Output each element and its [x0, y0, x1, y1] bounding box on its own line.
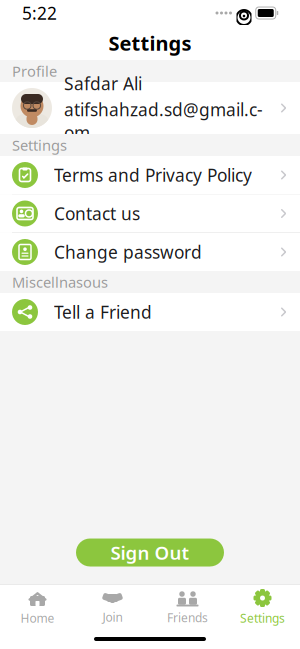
staticText: Join [102, 609, 122, 625]
staticText: Settings [240, 610, 285, 626]
button[interactable]: Contact us [0, 194, 300, 232]
staticText: Safdar Ali [64, 72, 142, 95]
staticText: 5:22 [22, 1, 57, 24]
button[interactable]: Tell a Friend [0, 293, 300, 331]
button[interactable]: Join [75, 585, 150, 629]
staticText: Friends [167, 609, 208, 625]
staticText: Profile [12, 61, 57, 81]
staticText: Tell a Friend [54, 300, 152, 323]
button[interactable]: Change password [0, 233, 300, 271]
staticText: Settings [12, 135, 67, 155]
button[interactable]: Settings [225, 585, 300, 629]
staticText: Sign Out [110, 540, 189, 565]
staticText: Change password [54, 240, 202, 263]
staticText: Settings [108, 30, 191, 56]
staticText: Home [20, 610, 54, 626]
button[interactable]: Safdar Ali [0, 82, 300, 134]
button[interactable]: Home [0, 585, 75, 629]
button[interactable]: Sign Out [76, 538, 224, 566]
staticText: atifshahzad.sd@gmail.com [64, 98, 263, 144]
staticText: Miscellnasous [12, 272, 108, 292]
button[interactable]: Terms and Privacy Policy [0, 156, 300, 194]
staticText: Contact us [54, 202, 140, 225]
button[interactable]: Friends [150, 585, 225, 629]
staticText: Terms and Privacy Policy [54, 163, 252, 186]
